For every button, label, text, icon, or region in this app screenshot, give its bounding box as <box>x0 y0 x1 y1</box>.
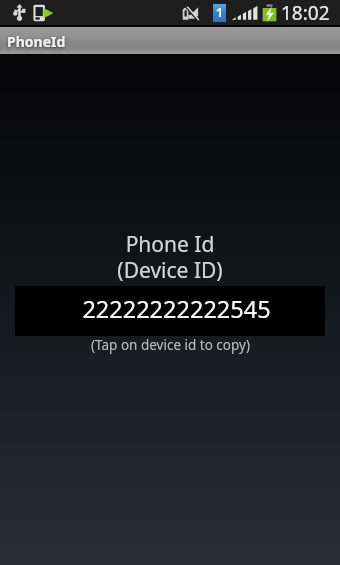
staticText: PhoneId <box>7 32 66 51</box>
other: Silent mode <box>182 5 199 21</box>
button[interactable]: 22222222222545 <box>15 286 325 336</box>
staticText: 22222222222545 <box>82 293 271 325</box>
staticText: Phone Id (Device ID) <box>117 230 223 285</box>
staticText: 1 <box>216 4 223 20</box>
other: Mobile signal strength <box>231 4 258 21</box>
other: USB connected <box>13 4 26 21</box>
staticText: 18:02 <box>281 0 330 25</box>
other: USB transfer mode <box>33 4 54 22</box>
other: Battery charging <box>262 4 277 22</box>
staticText: (Tap on device id to copy) <box>91 336 250 354</box>
